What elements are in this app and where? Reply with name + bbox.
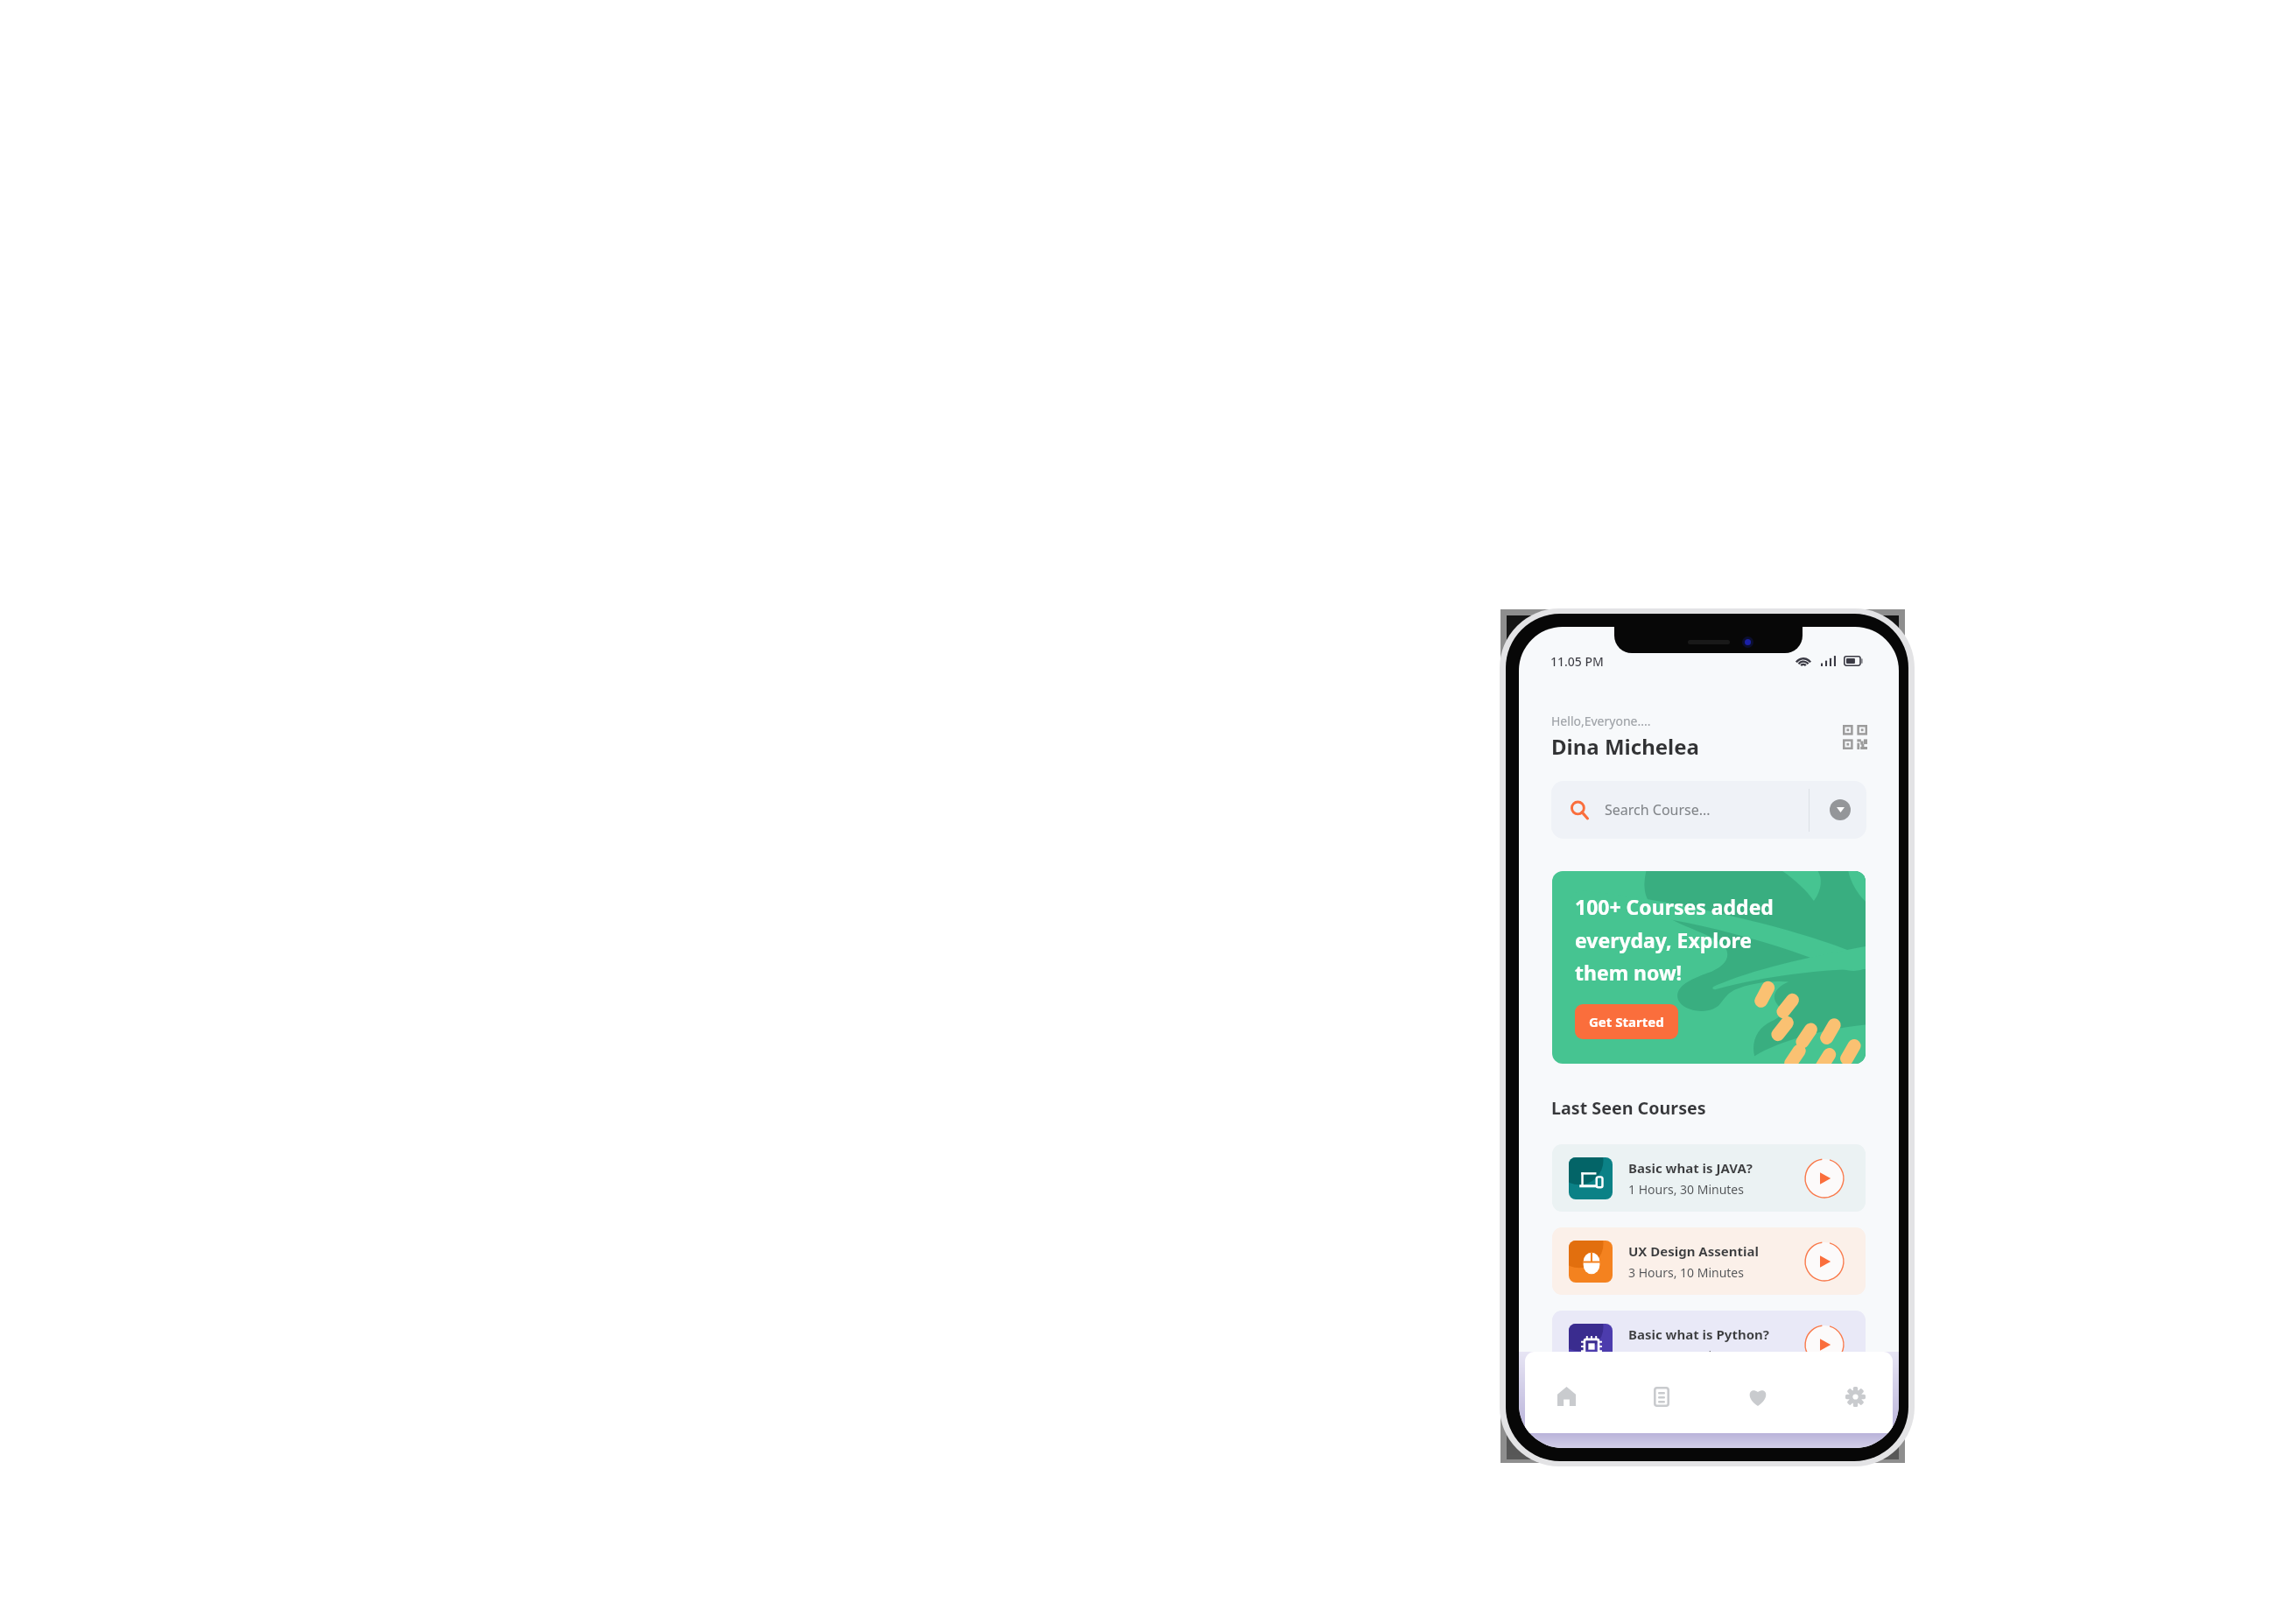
staticText: 1 Hours, 30 Minutes bbox=[1628, 1181, 1744, 1198]
button[interactable]: Favourites bbox=[1730, 1370, 1786, 1423]
staticText: UX Design Assential bbox=[1628, 1242, 1759, 1260]
staticText: Search Course... bbox=[1605, 800, 1711, 819]
button[interactable]: Home bbox=[1538, 1370, 1594, 1423]
button[interactable]: Settings bbox=[1827, 1370, 1883, 1423]
button[interactable]: Play course bbox=[1804, 1325, 1845, 1365]
staticText: Dina Michelea bbox=[1551, 732, 1699, 761]
button[interactable]: Play course bbox=[1804, 1241, 1845, 1282]
button[interactable]: Filter bbox=[1830, 799, 1851, 820]
staticText: Hello,Everyone.... bbox=[1551, 713, 1651, 729]
staticText: everyday, Explore bbox=[1575, 926, 1753, 953]
button[interactable]: UX Design Assential bbox=[1552, 1227, 1866, 1295]
button[interactable]: Scan QR code bbox=[1840, 722, 1870, 752]
button[interactable]: Courses bbox=[1634, 1370, 1690, 1423]
staticText: 1 Hours, 30 Minutes bbox=[1628, 1347, 1744, 1364]
staticText: 100+ Courses added bbox=[1575, 893, 1774, 920]
button[interactable]: Basic what is Python? bbox=[1552, 1311, 1866, 1378]
staticText: Basic what is JAVA? bbox=[1628, 1159, 1753, 1177]
button[interactable]: 100+ Courses added bbox=[1552, 871, 1866, 1064]
staticText: 11.05 PM bbox=[1550, 653, 1604, 670]
button[interactable]: Basic what is JAVA? bbox=[1552, 1144, 1866, 1212]
staticText: 3 Hours, 10 Minutes bbox=[1628, 1264, 1744, 1281]
staticText: Basic what is Python? bbox=[1628, 1325, 1769, 1343]
staticText: Last Seen Courses bbox=[1551, 1096, 1706, 1120]
button[interactable]: Get Started bbox=[1575, 1004, 1678, 1039]
staticText: Get Started bbox=[1589, 1013, 1664, 1030]
button[interactable]: Play course bbox=[1804, 1158, 1845, 1199]
button[interactable]: Search Course... bbox=[1551, 781, 1866, 839]
staticText: them now! bbox=[1575, 959, 1683, 986]
